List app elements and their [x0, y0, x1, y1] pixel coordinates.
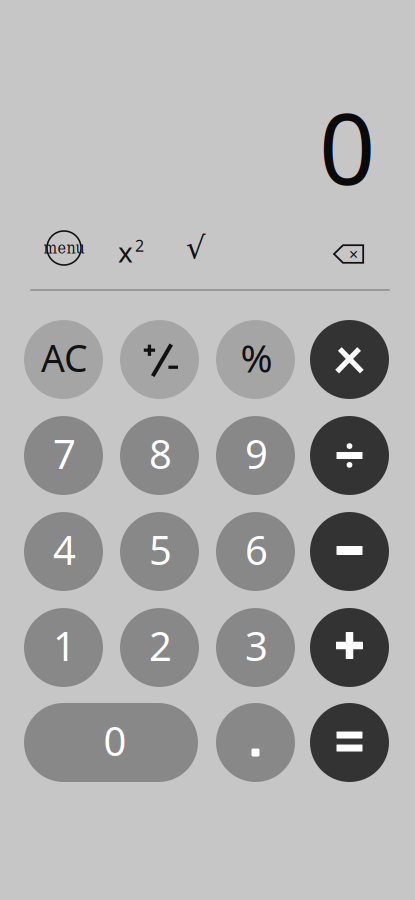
staticText: 0: [103, 714, 126, 767]
staticText: 1: [53, 619, 76, 672]
button[interactable]: 0: [24, 703, 198, 782]
button[interactable]: Decimal point: [216, 703, 295, 782]
button[interactable]: 8: [120, 416, 199, 495]
button[interactable]: Minus: [310, 512, 389, 591]
staticText: 8: [149, 427, 172, 480]
button[interactable]: Equals: [310, 703, 389, 782]
staticText: 7: [53, 427, 76, 480]
button[interactable]: 5: [120, 512, 199, 591]
button[interactable]: Square: [118, 232, 150, 268]
button[interactable]: 3: [216, 608, 295, 687]
button[interactable]: 7: [24, 416, 103, 495]
button[interactable]: Menu: [41, 225, 87, 271]
staticText: %: [240, 332, 272, 383]
button[interactable]: Multiply: [310, 320, 389, 399]
staticText: √: [186, 231, 206, 265]
staticText: 5: [149, 523, 172, 576]
staticText: 2: [149, 619, 172, 672]
button[interactable]: AC: [24, 320, 103, 399]
staticText: ×: [349, 243, 358, 265]
staticText: x: [118, 233, 133, 270]
staticText: AC: [41, 333, 88, 382]
staticText: 6: [245, 523, 268, 576]
button[interactable]: Delete: [333, 244, 364, 264]
button[interactable]: 6: [216, 512, 295, 591]
staticText: menu: [43, 239, 84, 257]
button[interactable]: Divide: [310, 416, 389, 495]
button[interactable]: Plus: [310, 608, 389, 687]
staticText: 3: [245, 619, 268, 672]
button[interactable]: 4: [24, 512, 103, 591]
button[interactable]: 9: [216, 416, 295, 495]
button[interactable]: Square root: [181, 231, 211, 265]
button[interactable]: 1: [24, 608, 103, 687]
staticText: 2: [135, 235, 144, 256]
staticText: 0: [319, 81, 375, 212]
button[interactable]: %: [216, 320, 295, 399]
button[interactable]: 2: [120, 608, 199, 687]
staticText: 9: [245, 427, 268, 480]
staticText: 4: [53, 523, 76, 576]
button[interactable]: Toggle sign: [120, 320, 199, 399]
